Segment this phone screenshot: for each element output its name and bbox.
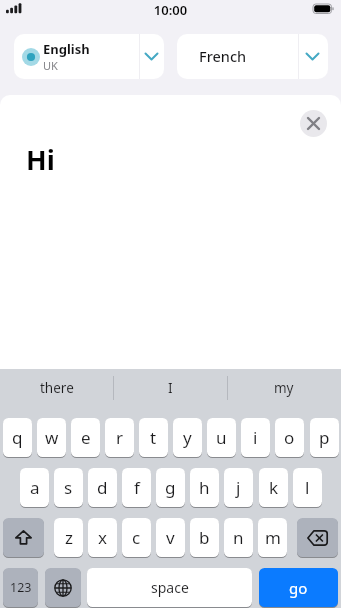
button[interactable]: n	[224, 518, 253, 557]
button[interactable]: d	[88, 468, 117, 507]
button[interactable]: s	[54, 468, 83, 507]
button[interactable]: French	[177, 34, 328, 79]
button[interactable]: g	[156, 468, 185, 507]
staticText: a	[30, 476, 40, 499]
staticText: m	[265, 526, 281, 549]
button[interactable]: j	[224, 468, 253, 507]
staticText: g	[165, 476, 176, 499]
staticText: f	[134, 476, 140, 499]
button[interactable]: English	[14, 34, 164, 79]
staticText: Hi	[26, 141, 55, 178]
button[interactable]	[300, 110, 327, 137]
staticText: c	[132, 526, 141, 549]
button[interactable]: w	[37, 418, 66, 457]
staticText: n	[233, 526, 244, 549]
staticText: space	[151, 578, 189, 597]
button[interactable]: p	[310, 418, 339, 457]
staticText: r	[116, 426, 124, 449]
button[interactable]: b	[190, 518, 219, 557]
button[interactable]: 123	[3, 568, 38, 607]
button[interactable]: e	[71, 418, 100, 457]
button[interactable]: i	[241, 418, 270, 457]
staticText: there	[40, 379, 74, 397]
staticText: w	[45, 426, 59, 449]
button[interactable]	[3, 518, 44, 557]
button[interactable]: r	[105, 418, 134, 457]
staticText: v	[166, 526, 175, 549]
button[interactable]: v	[156, 518, 185, 557]
button[interactable]: h	[190, 468, 219, 507]
button[interactable]: space	[87, 568, 252, 607]
staticText: English	[43, 40, 90, 58]
button[interactable]: z	[54, 518, 83, 557]
button[interactable]	[297, 518, 338, 557]
button[interactable]: u	[207, 418, 236, 457]
button[interactable]: c	[122, 518, 151, 557]
staticText: j	[236, 476, 241, 499]
button[interactable]: I	[113, 369, 227, 407]
button[interactable]: l	[293, 468, 322, 507]
button[interactable]: a	[20, 468, 49, 507]
button[interactable]: q	[3, 418, 32, 457]
staticText: u	[216, 426, 227, 449]
staticText: French	[199, 46, 247, 66]
staticText: my	[274, 379, 294, 397]
staticText: p	[319, 426, 330, 449]
button[interactable]: o	[275, 418, 304, 457]
button[interactable]: there	[0, 369, 113, 407]
staticText: h	[199, 476, 210, 499]
staticText: z	[65, 526, 73, 549]
staticText: s	[64, 476, 73, 499]
button[interactable]	[45, 568, 81, 607]
staticText: o	[284, 426, 295, 449]
button[interactable]: x	[88, 518, 117, 557]
button[interactable]: k	[259, 468, 288, 507]
staticText: 10:00	[0, 1, 341, 19]
button[interactable]: t	[139, 418, 168, 457]
staticText: b	[199, 526, 210, 549]
staticText: k	[269, 476, 279, 499]
staticText: q	[12, 426, 23, 449]
staticText: UK	[43, 58, 58, 73]
staticText: i	[253, 426, 258, 449]
staticText: t	[150, 426, 157, 449]
button[interactable]: y	[173, 418, 202, 457]
staticText: y	[183, 426, 192, 449]
button[interactable]: m	[258, 518, 287, 557]
button[interactable]: go	[259, 568, 338, 607]
button[interactable]: my	[227, 369, 341, 407]
staticText: e	[81, 426, 91, 449]
staticText: d	[97, 476, 108, 499]
staticText: 123	[10, 579, 32, 596]
staticText: x	[98, 526, 107, 549]
button[interactable]: f	[122, 468, 151, 507]
staticText: I	[168, 379, 173, 397]
staticText: go	[289, 578, 308, 598]
staticText: l	[305, 476, 310, 499]
